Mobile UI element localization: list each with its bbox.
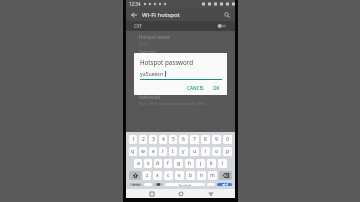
staticText: Turn off hotspot automatically, Max Conn… bbox=[139, 101, 229, 106]
button[interactable]: j bbox=[196, 159, 205, 168]
staticText: q bbox=[131, 148, 135, 155]
button[interactable]: CANCEL bbox=[185, 84, 207, 92]
staticText: 0 bbox=[226, 136, 229, 143]
staticText: y bbox=[182, 148, 185, 155]
button[interactable]: n bbox=[197, 171, 206, 180]
staticText: c bbox=[167, 172, 170, 179]
button[interactable]: c bbox=[164, 171, 173, 180]
button[interactable]: Search bbox=[222, 10, 232, 20]
button[interactable]: 1 bbox=[129, 135, 137, 144]
staticText: m bbox=[210, 172, 215, 179]
staticText: j bbox=[200, 160, 202, 167]
button[interactable]: OK bbox=[211, 84, 222, 92]
staticText: 7 bbox=[193, 136, 196, 143]
staticText: a bbox=[137, 160, 140, 167]
button[interactable]: w bbox=[139, 147, 147, 156]
staticText: Hotspot name bbox=[139, 34, 170, 40]
button[interactable]: p bbox=[223, 147, 232, 156]
staticText: •••••••• bbox=[139, 71, 152, 76]
button[interactable]: l bbox=[218, 159, 227, 168]
button[interactable]: 7 bbox=[190, 135, 199, 144]
button[interactable]: 9 bbox=[212, 135, 221, 144]
button[interactable]: 4 bbox=[159, 135, 167, 144]
button[interactable]: Navigate up bbox=[129, 10, 139, 20]
button[interactable]: Symbols bbox=[129, 183, 142, 186]
button[interactable]: b bbox=[186, 171, 195, 180]
button[interactable]: 8 bbox=[201, 135, 210, 144]
button[interactable]: 0 bbox=[223, 135, 232, 144]
staticText: 2 bbox=[142, 136, 145, 143]
button[interactable]: v bbox=[175, 171, 184, 180]
button[interactable]: Recents bbox=[147, 189, 156, 198]
button[interactable]: English bbox=[165, 183, 205, 186]
button[interactable]: z bbox=[143, 171, 151, 180]
staticText: x bbox=[156, 172, 159, 179]
button[interactable]: Back bbox=[206, 189, 215, 198]
staticText: b bbox=[189, 172, 193, 179]
staticText: 12:34 bbox=[129, 1, 141, 7]
button[interactable]: , bbox=[144, 183, 152, 186]
staticText: k bbox=[210, 160, 213, 167]
button[interactable]: r bbox=[159, 147, 167, 156]
button[interactable]: a bbox=[134, 159, 142, 168]
staticText: 3 bbox=[152, 136, 155, 143]
button[interactable]: m bbox=[208, 171, 217, 180]
staticText: English bbox=[179, 183, 192, 186]
button[interactable]: g bbox=[174, 159, 183, 168]
staticText: f bbox=[167, 160, 169, 167]
staticText: Wi-Fi hotspot bbox=[142, 11, 180, 19]
staticText: 1 bbox=[132, 136, 135, 143]
staticText: o bbox=[215, 148, 219, 155]
staticText: Advanced bbox=[139, 94, 161, 100]
button[interactable]: s bbox=[144, 159, 152, 168]
button[interactable]: Enter bbox=[217, 183, 232, 186]
button[interactable]: Shift bbox=[129, 171, 141, 180]
staticText: r bbox=[162, 148, 165, 155]
staticText: e bbox=[152, 148, 155, 155]
button[interactable]: x bbox=[153, 171, 162, 180]
staticText: w bbox=[141, 148, 145, 155]
button[interactable]: e bbox=[149, 147, 157, 156]
staticText: WPA2 PSK bbox=[139, 56, 158, 61]
staticText: u bbox=[193, 148, 197, 155]
button[interactable]: Backspace bbox=[219, 171, 232, 180]
staticText: 9 bbox=[215, 136, 218, 143]
staticText: CANCEL bbox=[187, 85, 205, 91]
staticText: p bbox=[226, 148, 230, 155]
button[interactable]: h bbox=[185, 159, 194, 168]
button[interactable]: u bbox=[190, 147, 199, 156]
button[interactable]: d bbox=[154, 159, 162, 168]
staticText: v bbox=[178, 172, 181, 179]
staticText: l bbox=[222, 160, 224, 167]
button[interactable]: i bbox=[201, 147, 210, 156]
staticText: i bbox=[205, 148, 207, 155]
staticText: n bbox=[200, 172, 204, 179]
staticText: AP Band bbox=[139, 79, 158, 85]
button[interactable]: 3 bbox=[149, 135, 157, 144]
button[interactable]: 2 bbox=[139, 135, 147, 144]
button[interactable]: 5 bbox=[169, 135, 177, 144]
staticText: ?123 bbox=[132, 183, 140, 186]
staticText: 6 bbox=[182, 136, 185, 143]
button[interactable]: Home bbox=[176, 189, 185, 198]
button[interactable]: Change language bbox=[154, 183, 163, 186]
staticText: z bbox=[146, 172, 149, 179]
button[interactable]: y bbox=[179, 147, 188, 156]
staticText: 4 bbox=[162, 136, 165, 143]
staticText: 5 bbox=[172, 136, 175, 143]
button[interactable]: k bbox=[207, 159, 216, 168]
staticText: h bbox=[188, 160, 192, 167]
button[interactable]: Off bbox=[126, 21, 235, 31]
button[interactable]: q bbox=[129, 147, 137, 156]
button[interactable]: t bbox=[169, 147, 177, 156]
button[interactable]: 6 bbox=[179, 135, 188, 144]
staticText: OK bbox=[213, 85, 220, 91]
staticText: s bbox=[147, 160, 150, 167]
button[interactable]: f bbox=[164, 159, 172, 168]
button[interactable]: o bbox=[212, 147, 221, 156]
button[interactable]: . bbox=[207, 183, 215, 186]
staticText: Pixel bbox=[139, 41, 148, 46]
